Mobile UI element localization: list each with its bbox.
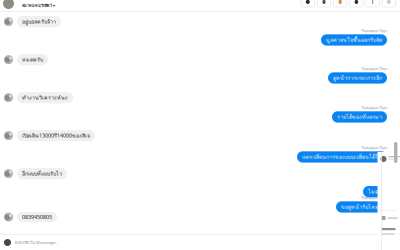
button[interactable]: Thanawon Thon — [0, 145, 400, 163]
button[interactable]: Toolbar item 3 — [333, 0, 347, 7]
staticText: มูลค่าสนใจพื้นออกรับจัด — [326, 36, 382, 44]
staticText: อยู่บอลครับจ้าา — [22, 17, 56, 26]
staticText: รายได้ของที่แจกมา — [337, 113, 382, 121]
button[interactable]: Thanawon Thon — [0, 105, 400, 123]
button[interactable]: Thanawon Thon — [0, 28, 400, 46]
staticText: Thanawon Thon — [361, 28, 387, 33]
staticText: Thanawon Thon — [361, 66, 387, 71]
button[interactable]: 0839450805 — [0, 212, 400, 222]
button[interactable]: Toolbar item 2 — [317, 0, 331, 7]
button[interactable]: Thanawon Thon — [0, 66, 400, 84]
button[interactable]: Thanawon Thon — [0, 195, 400, 213]
staticText: Thanawon Thon — [361, 195, 387, 200]
staticText: สมาคมคนรักสัตว์ ▾ — [22, 2, 55, 9]
staticText: ขอดูหน้ารับไหมดี — [341, 203, 382, 211]
staticText: ทำงานวิเคราะห์นะ — [22, 93, 68, 102]
staticText: ดูหน้ากากเกมเกาะอีก — [333, 74, 382, 82]
button[interactable]: Toolbar item 4 — [350, 0, 363, 7]
staticText: Thanawon Thon — [361, 105, 387, 110]
button[interactable]: อีกแบบที่แบบรับไว — [0, 168, 400, 179]
button[interactable]: สมาคมคนรักสัตว์ ▾ — [0, 0, 400, 11]
staticText: อีกแบบที่แบบรับไว — [22, 169, 62, 178]
staticText: ตอบกลับใน Messenger… — [15, 239, 58, 246]
staticText: เปิดเต็น13000รึ14000ของสิเจ — [22, 131, 90, 140]
button[interactable]: Toolbar item 1 — [301, 0, 315, 7]
staticText: ไม่คร — [368, 187, 382, 196]
button[interactable]: ตอบกลับใน Messenger… — [0, 235, 400, 250]
button[interactable]: Toolbar item 6 — [382, 0, 396, 7]
staticText: Thanawon Thon — [361, 145, 387, 150]
button[interactable]: Toolbar item 5 — [366, 0, 379, 7]
button[interactable]: อยู่บอลครับจ้าา — [0, 16, 400, 27]
staticText: 0839450805 — [22, 213, 52, 221]
button[interactable]: หมดครับ — [0, 54, 400, 65]
button[interactable]: ทำงานวิเคราะห์นะ — [0, 92, 400, 103]
staticText: แลกเปลี่ยนการของแบบเปลี่ยนได้ใน — [302, 153, 382, 161]
staticText: หมดครับ — [22, 55, 43, 64]
button[interactable]: ไม่คร — [0, 186, 400, 197]
button[interactable]: เปิดเต็น13000รึ14000ของสิเจ — [0, 130, 400, 141]
